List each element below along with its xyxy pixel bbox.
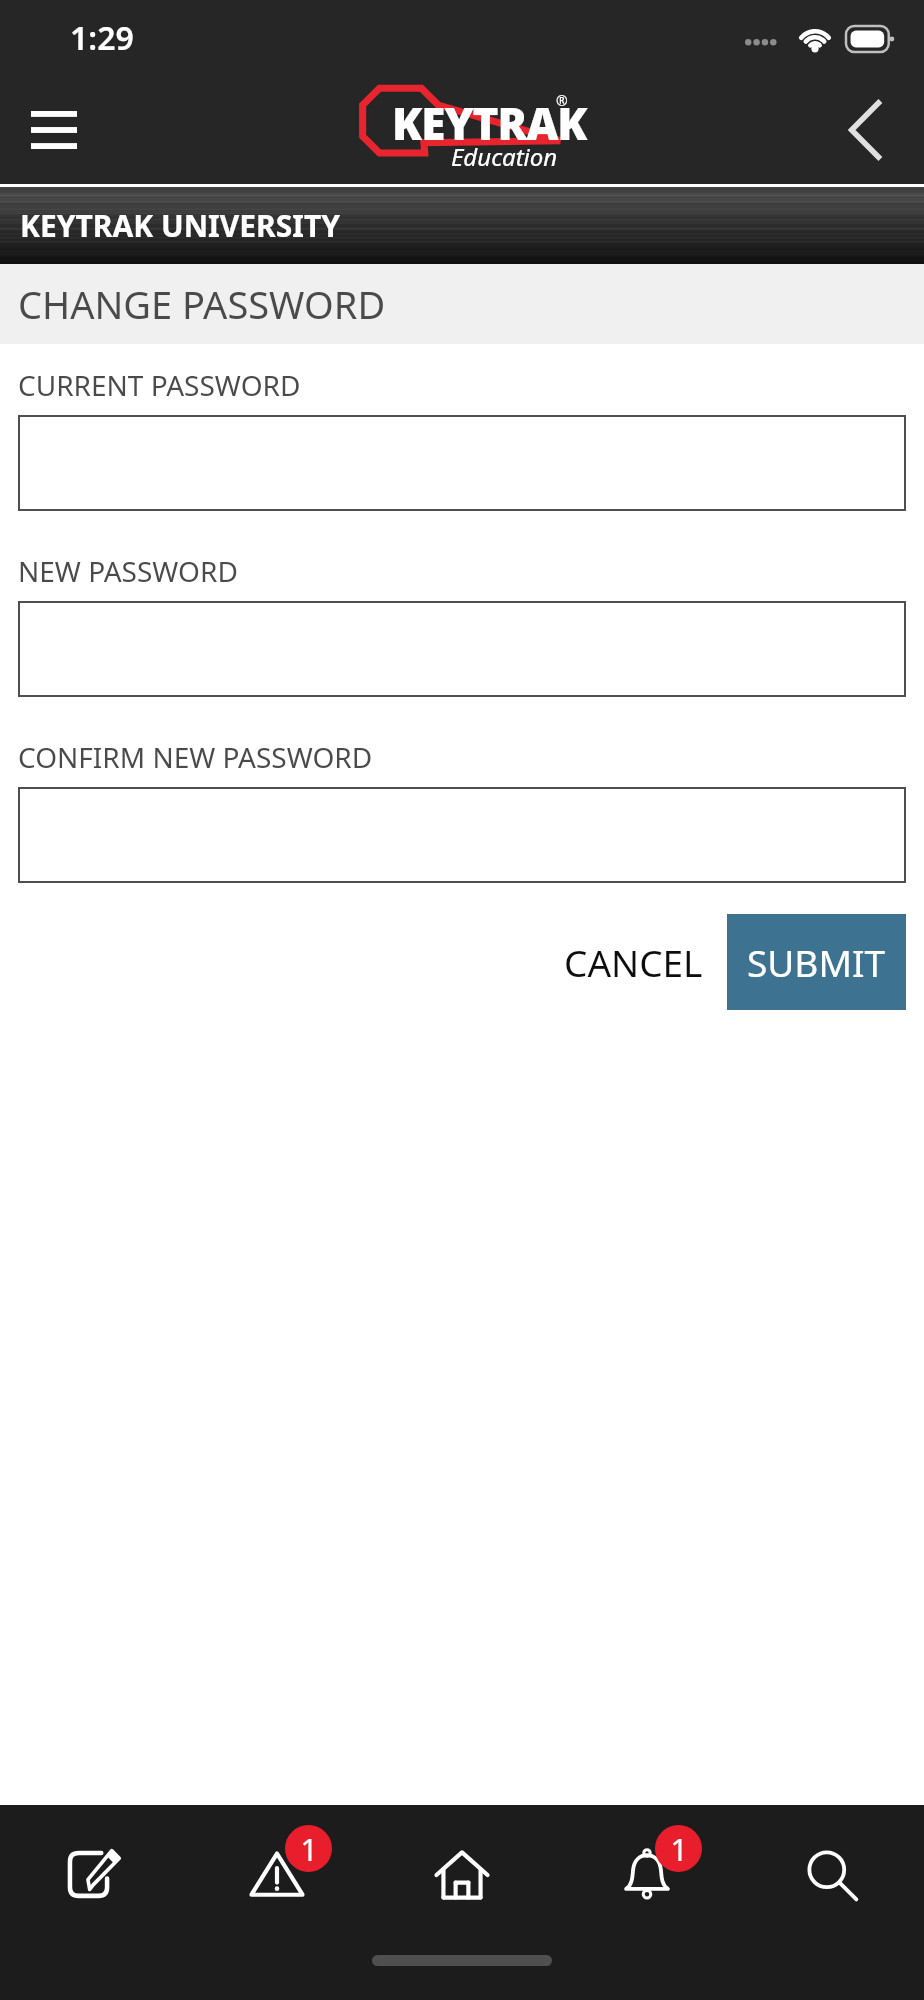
button[interactable]: Menu: [14, 90, 94, 170]
button[interactable]: Password field: [18, 787, 906, 883]
button[interactable]: Search: [739, 1805, 924, 1945]
staticText: KEYTRAK UNIVERSITY: [20, 205, 340, 246]
button[interactable]: Password field: [18, 601, 906, 697]
button[interactable]: Edit: [0, 1805, 184, 1945]
button[interactable]: Alerts: [184, 1805, 369, 1945]
staticText: CANCEL: [564, 937, 703, 987]
button[interactable]: CANCEL: [540, 914, 727, 1010]
staticText: 1: [300, 1828, 318, 1870]
staticText: ®: [556, 91, 568, 110]
button[interactable]: Password field: [18, 415, 906, 511]
button[interactable]: Home: [369, 1805, 554, 1945]
button[interactable]: Notifications: [554, 1805, 739, 1945]
staticText: 1: [670, 1828, 688, 1870]
button[interactable]: Back: [826, 90, 906, 170]
staticText: Education: [451, 140, 558, 173]
staticText: CHANGE PASSWORD: [18, 278, 386, 330]
staticText: KEYTRAK: [392, 93, 587, 153]
staticText: SUBMIT: [747, 937, 886, 987]
staticText: CONFIRM NEW PASSWORD: [18, 738, 373, 776]
staticText: CURRENT PASSWORD: [18, 366, 301, 404]
staticText: 1:29: [70, 16, 134, 60]
staticText: NEW PASSWORD: [18, 552, 238, 590]
button[interactable]: SUBMIT: [727, 914, 906, 1010]
